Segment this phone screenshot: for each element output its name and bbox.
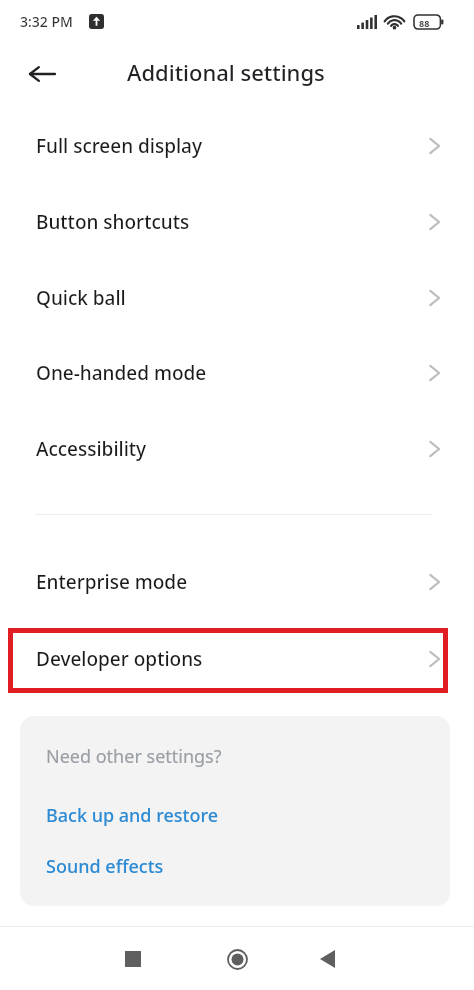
button[interactable]: Back	[304, 936, 350, 982]
staticText: Quick ball	[36, 285, 429, 311]
staticText: Button shortcuts	[36, 209, 429, 235]
staticText: Sound effects	[46, 854, 164, 879]
staticText: One-handed mode	[36, 360, 429, 386]
button[interactable]: Back up and restore	[20, 795, 450, 835]
button[interactable]: Recent apps	[110, 936, 156, 982]
staticText: Developer options	[36, 646, 429, 672]
staticText: Accessibility	[36, 436, 429, 462]
button[interactable]: Full screen display	[0, 115, 474, 177]
staticText: 3:32 PM	[20, 12, 73, 31]
button[interactable]: One-handed mode	[0, 342, 474, 404]
button[interactable]: Developer options	[0, 628, 474, 690]
button[interactable]: Quick ball	[0, 267, 474, 329]
staticText: Additional settings	[127, 57, 325, 87]
staticText: Full screen display	[36, 133, 429, 159]
staticText: Enterprise mode	[36, 569, 429, 595]
button[interactable]: Enterprise mode	[0, 551, 474, 613]
button[interactable]: Button shortcuts	[0, 191, 474, 253]
button[interactable]: Accessibility	[0, 418, 474, 480]
button[interactable]: Back	[22, 54, 62, 94]
staticText: Back up and restore	[46, 803, 219, 828]
staticText: Need other settings?	[46, 744, 222, 769]
button[interactable]: Sound effects	[20, 846, 450, 886]
button[interactable]: Home	[214, 936, 260, 982]
staticText: 88	[419, 17, 430, 29]
